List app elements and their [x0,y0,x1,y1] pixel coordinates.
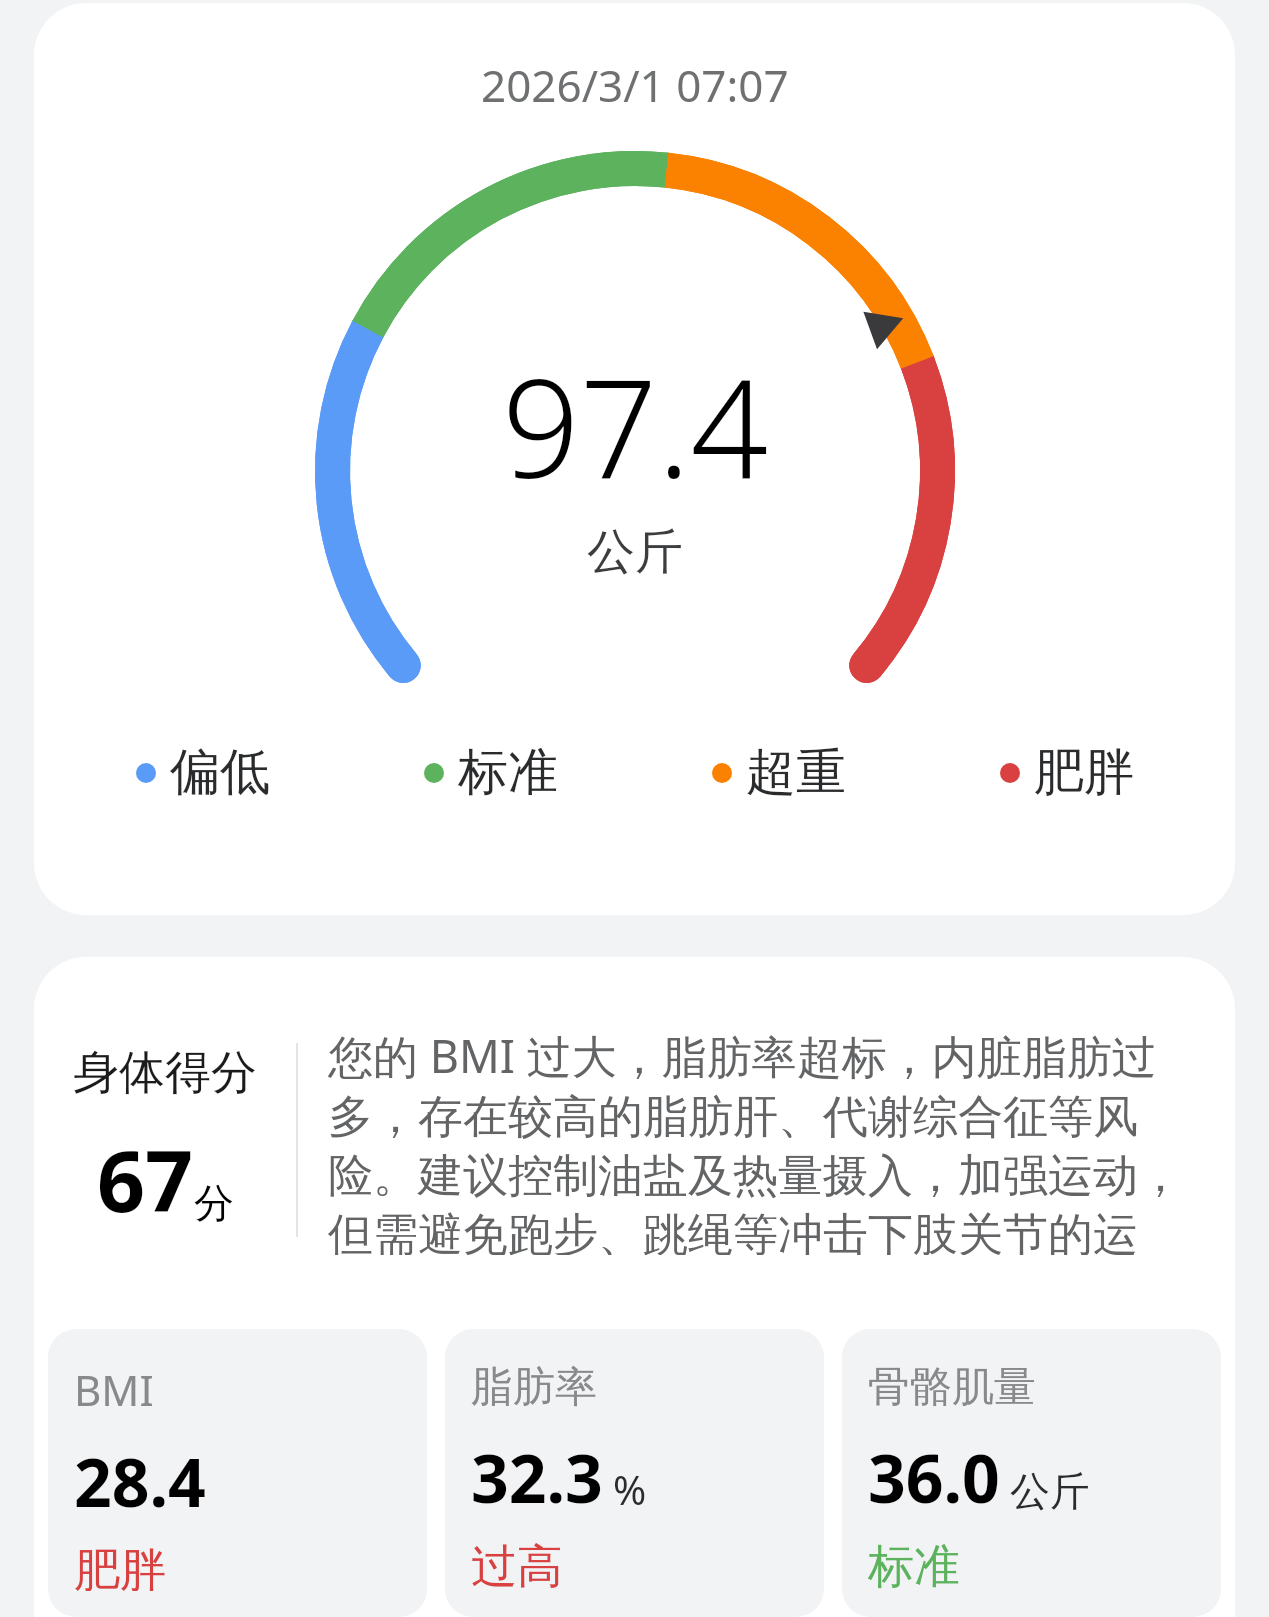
staticText: 32.3 [471,1432,603,1522]
staticText: 公斤 [1010,1466,1090,1516]
staticText: 脂肪率 [471,1361,597,1414]
staticText: 67 [97,1122,194,1236]
staticText: 身体得分 [73,1044,257,1102]
staticText: 97.4 [502,333,769,518]
staticText: 公斤 [587,522,683,582]
staticText: % [613,1462,647,1516]
staticText: BMI [74,1361,154,1418]
staticText: 骨骼肌量 [868,1361,1036,1414]
button[interactable]: 2026/3/1 07:07 [34,3,1235,915]
button[interactable]: 肥胖 [923,741,1211,804]
staticText: 肥胖 [1034,741,1134,804]
staticText: 肥胖 [74,1542,166,1591]
button[interactable]: 骨骼肌量 [842,1329,1221,1617]
button[interactable]: 脂肪率 [445,1329,824,1617]
staticText: 分 [194,1178,234,1228]
staticText: 28.4 [74,1436,206,1526]
staticText: 过高 [471,1538,563,1591]
button[interactable]: 超重 [635,741,923,804]
button[interactable]: BMI [48,1329,427,1617]
staticText: 标准 [458,741,558,804]
button[interactable]: 标准 [347,741,635,804]
button[interactable]: 偏低 [58,741,347,804]
staticText: 36.0 [868,1432,1000,1522]
staticText: 2026/3/1 07:07 [481,55,789,115]
staticText: 您的 BMI 过大，脂肪率超标，内脏脂肪过多，存在较高的脂肪肝、代谢综合征等风险… [328,1025,1225,1255]
staticText: 超重 [746,741,846,804]
staticText: 标准 [868,1538,960,1591]
staticText: 偏低 [170,741,270,804]
